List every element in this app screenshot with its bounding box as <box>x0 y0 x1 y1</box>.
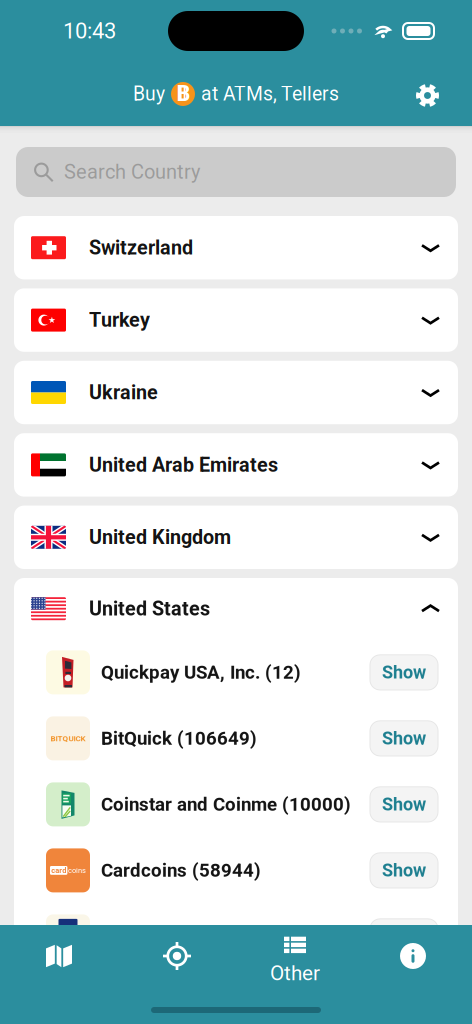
button[interactable]: United Arab Emirates <box>14 433 458 497</box>
button[interactable]: United Kingdom <box>14 506 458 569</box>
staticText: Show <box>382 860 426 881</box>
staticText: BITQUICK <box>50 734 85 743</box>
button[interactable]: Settings <box>398 70 472 117</box>
button[interactable]: Info <box>354 927 472 985</box>
button[interactable]: Show <box>370 919 438 954</box>
staticText: United Kingdom <box>89 526 231 549</box>
staticText: at ATMs, Tellers <box>201 83 339 105</box>
staticText: United States <box>89 597 210 620</box>
staticText: BitQuick (106649) <box>101 727 257 749</box>
button[interactable]: Map <box>0 927 118 985</box>
button[interactable]: Ukraine <box>14 361 458 424</box>
staticText: Search Country <box>64 160 200 184</box>
staticText: Turkey <box>89 308 150 332</box>
button[interactable]: Show <box>370 787 438 822</box>
staticText: ★ <box>48 315 56 325</box>
staticText: Coinstar and Coinme (10000) <box>101 793 351 815</box>
button[interactable]: United States <box>14 578 458 639</box>
staticText: Switzerland <box>89 236 193 259</box>
staticText: card <box>51 866 66 875</box>
button[interactable]: Show <box>370 853 438 888</box>
staticText: Buy <box>133 83 165 105</box>
staticText: B <box>176 81 190 106</box>
button[interactable]: ★ <box>14 288 458 352</box>
button[interactable]: Near me <box>118 927 236 985</box>
staticText: Cardcoins (58944) <box>101 859 261 881</box>
staticText: Show <box>382 728 426 749</box>
staticText: Ukraine <box>89 381 158 404</box>
staticText: Other <box>270 961 320 985</box>
button[interactable]: Switzerland <box>14 216 458 279</box>
button[interactable]: Show <box>370 655 438 690</box>
staticText: Show <box>382 662 426 683</box>
button[interactable]: Other <box>236 927 354 985</box>
staticText: United Arab Emirates <box>89 453 278 476</box>
staticText: 10:43 <box>63 18 116 44</box>
staticText: Show <box>382 926 426 947</box>
staticText: Quickpay USA, Inc. (12) <box>101 661 301 683</box>
staticText: Bitcoin Depot (7200) <box>101 925 278 947</box>
button[interactable]: Show <box>370 721 438 756</box>
staticText: Show <box>382 794 426 815</box>
staticText: coins <box>68 866 86 875</box>
